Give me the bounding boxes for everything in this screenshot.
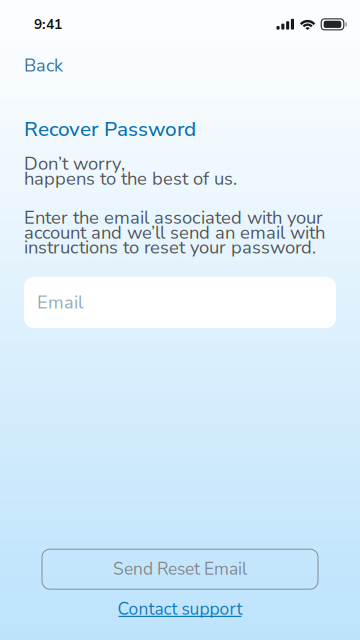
button[interactable]: Send Reset Email	[0, 549, 360, 589]
staticText: Back	[24, 53, 63, 78]
staticText: Recover Password	[24, 115, 196, 143]
button[interactable]: Back	[0, 50, 87, 81]
staticText: 9:41	[34, 15, 62, 34]
staticText: Send Reset Email	[113, 557, 247, 581]
staticText: Contact support	[117, 597, 242, 621]
staticText: Enter the email associated with your acc…	[24, 205, 325, 260]
button[interactable]: Email	[0, 277, 360, 328]
staticText: Don’t worry, happens to the best of us.	[24, 151, 237, 191]
button[interactable]: Contact support	[0, 597, 360, 617]
staticText: Email	[37, 290, 83, 315]
